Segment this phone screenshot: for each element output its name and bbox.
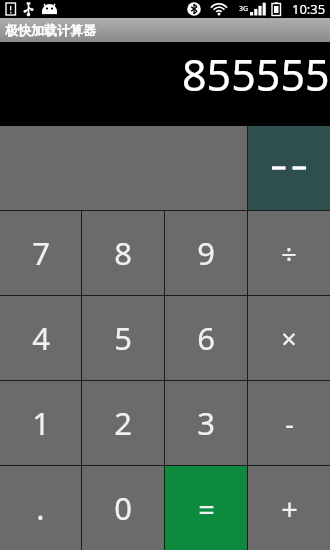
button[interactable]: 6 (165, 296, 247, 380)
button[interactable]: 4 (0, 296, 81, 380)
button[interactable]: 8 (82, 211, 164, 295)
staticText: ÷ (281, 235, 297, 272)
staticText: 8 (114, 232, 132, 274)
button[interactable]: ÷ (248, 211, 330, 295)
staticText: 3G (239, 4, 249, 14)
button[interactable]: 9 (165, 211, 247, 295)
staticText: × (281, 320, 297, 357)
staticText: - (285, 405, 294, 442)
staticText: 0 (114, 487, 132, 529)
button[interactable]: 3 (165, 381, 247, 465)
staticText: 855555 (182, 45, 330, 104)
staticText: 1 (32, 402, 50, 444)
button[interactable]: 1 (0, 381, 81, 465)
staticText: 9 (197, 232, 215, 274)
staticText: . (36, 487, 45, 529)
button[interactable]: = (165, 466, 247, 550)
staticText: = (198, 489, 215, 528)
staticText: 4 (32, 317, 50, 359)
staticText: 5 (114, 317, 132, 359)
button[interactable]: 5 (82, 296, 164, 380)
button[interactable]: 0 (82, 466, 164, 550)
staticText: + (281, 489, 298, 528)
staticText: 3 (197, 402, 215, 444)
button[interactable]: Delete (248, 126, 330, 210)
button[interactable]: × (248, 296, 330, 380)
staticText: 6 (197, 317, 215, 359)
button[interactable]: 2 (82, 381, 164, 465)
staticText: 2 (114, 402, 132, 444)
staticText: 极快加载计算器 (5, 22, 96, 38)
button[interactable]: - (248, 381, 330, 465)
button[interactable]: + (248, 466, 330, 550)
staticText: 7 (32, 232, 50, 274)
button[interactable]: . (0, 466, 81, 550)
button[interactable]: 7 (0, 211, 81, 295)
staticText: 10:35 (292, 0, 326, 18)
